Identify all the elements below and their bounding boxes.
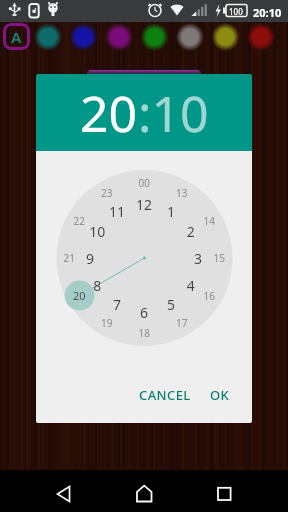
staticText: :10 [138, 79, 209, 147]
button[interactable] [192, 470, 288, 512]
button[interactable]: OK [202, 378, 238, 412]
button[interactable] [101, 22, 137, 58]
staticText: A [11, 27, 22, 47]
button[interactable]: CANCEL [131, 378, 199, 412]
button[interactable] [0, 470, 96, 512]
staticText: 20 [80, 79, 138, 147]
button[interactable] [243, 22, 279, 58]
button[interactable] [172, 22, 208, 58]
staticText: CANCEL [139, 386, 191, 404]
button[interactable] [96, 470, 192, 512]
button[interactable] [137, 22, 173, 58]
button[interactable] [30, 22, 66, 58]
button[interactable]: A [3, 23, 30, 50]
staticText: 20:10 [253, 5, 282, 20]
staticText: OK [210, 386, 230, 404]
button[interactable] [208, 22, 244, 58]
staticText: 100 [229, 6, 243, 17]
button[interactable] [66, 22, 102, 58]
